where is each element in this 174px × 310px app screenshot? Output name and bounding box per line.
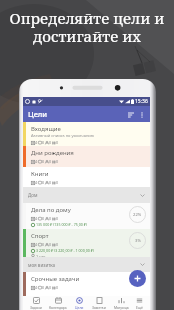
staticText: Дом — [28, 192, 38, 198]
staticText: 0 — [42, 216, 45, 221]
staticText: Цели — [75, 305, 84, 310]
button[interactable]: Спорт — [23, 229, 150, 257]
staticText: 4 — [35, 180, 38, 185]
staticText: 0 — [42, 242, 45, 247]
button[interactable]: Входящие — [23, 122, 150, 146]
staticText: Дела по дому — [31, 206, 71, 214]
staticText: Спорт — [31, 232, 49, 240]
staticText: 4 — [35, 140, 38, 145]
button[interactable]: Календарь — [48, 297, 68, 310]
staticText: Определяйте цели и достигайте их — [0, 8, 174, 47]
button[interactable]: Дни рождения — [23, 146, 150, 167]
staticText: Книги — [31, 170, 49, 178]
staticText: 0 — [56, 159, 59, 164]
button[interactable]: Дом — [23, 187, 150, 203]
staticText: Ещё — [136, 305, 143, 310]
staticText: 0 — [56, 216, 59, 221]
staticText: Цели — [28, 109, 48, 119]
button[interactable]: Матрица — [113, 297, 130, 310]
button[interactable]: Срочные задачи — [23, 272, 150, 296]
staticText: моя визитка — [28, 262, 56, 268]
staticText: 0 — [56, 242, 59, 247]
staticText: Матрица — [114, 305, 129, 310]
staticText: Дни рождения — [31, 149, 74, 157]
staticText: Календарь — [49, 305, 67, 310]
staticText: 15:36 — [135, 98, 148, 105]
button[interactable]: Заметки — [91, 297, 107, 310]
button[interactable]: моя визитка — [23, 257, 150, 272]
staticText: 0 — [56, 140, 59, 145]
staticText: 0 — [49, 216, 52, 221]
staticText: 4 — [35, 242, 38, 247]
staticText: 4 — [35, 285, 38, 290]
staticText: Задачи — [30, 305, 42, 310]
staticText: 0 — [42, 180, 45, 185]
button[interactable]: Ещё — [135, 297, 144, 310]
button[interactable]: Дела по дому — [23, 203, 150, 229]
staticText: Входящие — [31, 125, 61, 133]
staticText: 3% — [135, 238, 141, 244]
staticText: Срочные задачи — [31, 275, 80, 283]
button[interactable]: Задачи — [29, 297, 43, 310]
button[interactable]: Книги — [23, 167, 150, 187]
staticText: 0 — [49, 285, 52, 290]
staticText: 0 — [42, 285, 45, 290]
button[interactable]: More options — [137, 110, 146, 119]
staticText: 0 — [49, 242, 52, 247]
staticText: 0 — [49, 159, 52, 164]
staticText: 0 — [56, 180, 59, 185]
staticText: Заметки — [92, 305, 106, 310]
staticText: 0 — [56, 285, 59, 290]
staticText: 1 час — [36, 254, 46, 257]
button[interactable]: Sort — [126, 110, 135, 119]
staticText: 0 — [42, 140, 45, 145]
staticText: Активный список по умолчанию — [31, 133, 95, 138]
staticText: 0 — [42, 159, 45, 164]
staticText: 3 220,00 ₽ (3 220,00 ₽ - 1 000,00 ₽) — [36, 248, 94, 253]
staticText: 4 — [35, 159, 38, 164]
staticText: 4 — [35, 216, 38, 221]
staticText: 135 000 ₽ (135 000 ₽ - 75,00 ₽) — [36, 222, 87, 227]
button[interactable]: Цели — [74, 297, 85, 310]
staticText: 22% — [133, 212, 142, 218]
staticText: 0 — [49, 180, 52, 185]
button[interactable]: Add goal — [129, 270, 146, 287]
staticText: 0 — [49, 140, 52, 145]
